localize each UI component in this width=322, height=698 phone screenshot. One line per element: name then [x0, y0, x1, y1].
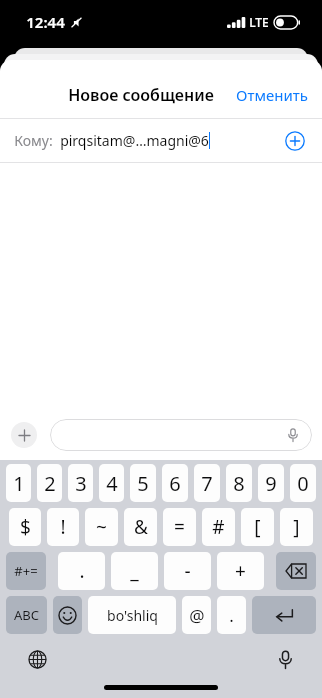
button[interactable]: Dictate: [50, 419, 312, 451]
staticText: -: [184, 558, 191, 584]
staticText: ~: [96, 514, 107, 540]
button[interactable]: 6: [162, 464, 188, 502]
button[interactable]: #: [202, 508, 235, 546]
button[interactable]: ABC: [6, 596, 47, 634]
button[interactable]: Return: [252, 596, 316, 634]
staticText: Отменить: [236, 85, 308, 105]
button[interactable]: -: [164, 552, 211, 590]
button[interactable]: ~: [85, 508, 118, 546]
button[interactable]: &: [124, 508, 157, 546]
staticText: Новое сообщение: [68, 84, 214, 106]
staticText: pirqsitam@…magni@6: [60, 131, 209, 150]
button[interactable]: [: [241, 508, 274, 546]
staticText: !: [60, 514, 66, 540]
staticText: 12:44: [26, 12, 65, 32]
button[interactable]: 7: [194, 464, 220, 502]
staticText: LTE: [249, 14, 269, 30]
button[interactable]: 0: [290, 464, 316, 502]
staticText: 6: [169, 470, 181, 497]
button[interactable]: 8: [226, 464, 252, 502]
staticText: 9: [265, 470, 277, 497]
button[interactable]: 5: [130, 464, 156, 502]
staticText: 1: [13, 470, 25, 497]
button[interactable]: .: [217, 596, 246, 634]
staticText: #+=: [14, 562, 38, 580]
button[interactable]: 1: [6, 464, 31, 502]
button[interactable]: 2: [37, 464, 62, 502]
button[interactable]: Attach: [11, 422, 37, 448]
staticText: 5: [137, 470, 149, 497]
staticText: &: [134, 514, 148, 540]
staticText: .: [79, 558, 85, 584]
button[interactable]: Add contact: [278, 124, 312, 158]
button[interactable]: Backspace: [276, 552, 316, 590]
staticText: ]: [293, 514, 300, 540]
button[interactable]: ]: [280, 508, 313, 546]
button[interactable]: $: [9, 508, 41, 546]
staticText: =: [174, 514, 185, 540]
button[interactable]: _: [111, 552, 158, 590]
button[interactable]: #+=: [6, 552, 46, 590]
button[interactable]: @: [182, 596, 211, 634]
button[interactable]: Emoji: [53, 596, 82, 634]
button[interactable]: 9: [258, 464, 284, 502]
button[interactable]: +: [217, 552, 264, 590]
staticText: bo'shliq: [107, 606, 158, 625]
staticText: 8: [233, 470, 245, 497]
staticText: #: [212, 514, 225, 540]
button[interactable]: 3: [68, 464, 93, 502]
staticText: .: [229, 604, 234, 627]
staticText: $: [20, 514, 31, 540]
staticText: 7: [201, 470, 213, 497]
staticText: 2: [44, 470, 56, 497]
button[interactable]: !: [47, 508, 79, 546]
staticText: [: [254, 514, 261, 540]
button[interactable]: Отменить: [222, 79, 322, 111]
staticText: 3: [75, 470, 87, 497]
button[interactable]: 4: [99, 464, 124, 502]
staticText: _: [130, 558, 139, 584]
other: Dictate: [283, 425, 303, 445]
staticText: 0: [297, 470, 309, 497]
staticText: ABC: [14, 606, 39, 624]
staticText: +: [235, 558, 246, 584]
button[interactable]: Dictation: [270, 644, 300, 674]
button[interactable]: =: [163, 508, 196, 546]
staticText: 4: [106, 470, 118, 497]
button[interactable]: .: [58, 552, 105, 590]
button[interactable]: Change keyboard: [22, 644, 52, 674]
staticText: @: [189, 604, 205, 627]
staticText: Кому:: [14, 131, 53, 150]
button[interactable]: bo'shliq: [88, 596, 176, 634]
